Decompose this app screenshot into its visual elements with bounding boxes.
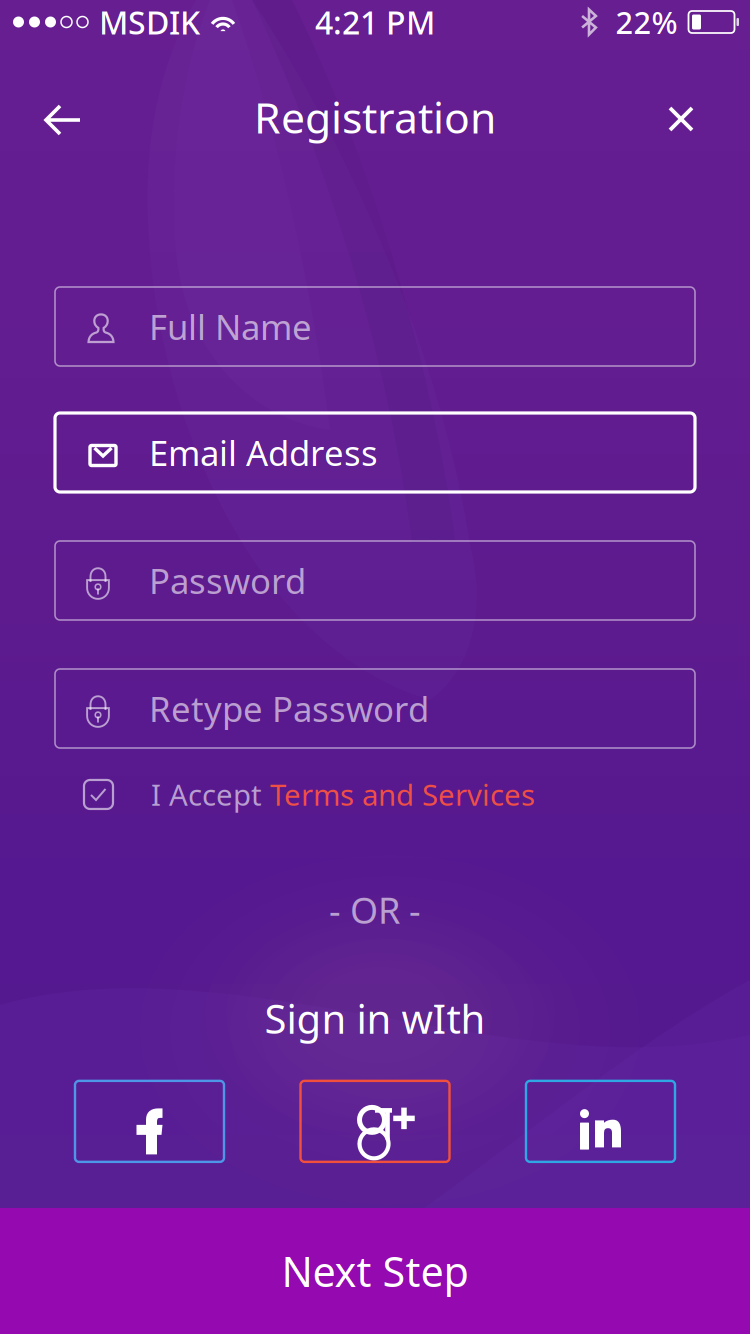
staticText: Password [149,557,306,603]
button[interactable]: Accept terms [84,780,113,809]
staticText: 22% [615,2,677,42]
button[interactable]: Close [648,87,728,147]
button[interactable]: Full Name [55,287,695,366]
staticText: 4:21 PM [315,1,435,43]
button[interactable]: Next Step [0,1208,750,1334]
button[interactable]: I Accept [151,775,535,814]
staticText: Email Address [149,429,378,475]
button[interactable]: Email Address [55,413,695,492]
staticText: Next Step [281,1244,468,1298]
button[interactable]: Sign in with LinkedIn [526,1081,675,1162]
staticText: - OR - [329,886,421,934]
button[interactable]: Retype Password [55,669,695,748]
button[interactable]: Sign in with Google Plus [300,1081,449,1162]
button[interactable]: Sign in with Facebook [75,1081,224,1162]
staticText: Full Name [149,303,312,349]
staticText: MSDIK [99,1,200,43]
staticText: Registration [254,89,496,145]
staticText: Retype Password [149,685,429,731]
staticText: I Accept [151,775,270,814]
staticText: Terms and Services [270,775,535,814]
button[interactable]: Back [22,87,102,147]
button[interactable]: Password [55,541,695,620]
staticText: Sign in wIth [264,992,485,1045]
